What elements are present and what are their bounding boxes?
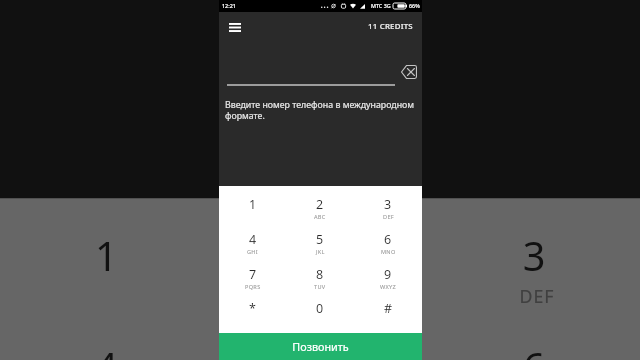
button[interactable]: Backspace [398, 61, 419, 82]
staticText: 66% [409, 2, 420, 9]
staticText: 7 [249, 266, 257, 283]
staticText: Позвонить [292, 339, 349, 354]
button[interactable]: Open navigation menu [224, 17, 245, 38]
staticText: 2 [316, 196, 324, 213]
button[interactable]: 11 CREDITS [359, 15, 422, 38]
staticText: 5 [307, 341, 333, 360]
staticText: 4 [249, 231, 257, 248]
staticText: 3 [384, 196, 392, 213]
staticText: 0 [316, 300, 324, 317]
button[interactable]: 1 [219, 186, 286, 221]
staticText: 9 [384, 266, 392, 283]
button[interactable]: 2 [286, 186, 354, 221]
staticText: GHI [247, 248, 259, 256]
button[interactable]: 7 [219, 256, 286, 290]
staticText: 4 [95, 341, 120, 360]
staticText: 1 [95, 230, 120, 284]
staticText: MNO [381, 248, 396, 256]
button[interactable]: * [219, 290, 286, 334]
staticText: Введите номер телефона в международном ф… [225, 99, 417, 121]
staticText: 5 [316, 231, 324, 248]
staticText: 6 [384, 231, 392, 248]
staticText: WXYZ [380, 283, 397, 291]
staticText: MTC 3G [371, 2, 391, 9]
button[interactable]: 0 [286, 290, 354, 334]
staticText: # [384, 300, 393, 317]
staticText: 6 [523, 341, 548, 360]
button[interactable]: 4 [219, 221, 286, 256]
button[interactable]: 6 [354, 221, 422, 256]
button[interactable]: # [354, 290, 422, 334]
staticText: 2 [307, 230, 333, 284]
staticText: 1 [249, 196, 257, 213]
staticText: * [249, 300, 256, 317]
staticText: TUV [314, 283, 326, 291]
staticText: 12:21 [222, 2, 236, 9]
button[interactable]: Позвонить [219, 333, 422, 360]
staticText: ABC [314, 213, 326, 221]
staticText: DEF [520, 284, 554, 309]
staticText: ABC [301, 284, 339, 309]
button[interactable]: 5 [286, 221, 354, 256]
button[interactable]: 8 [286, 256, 354, 290]
staticText: 11 CREDITS [368, 21, 413, 32]
staticText: 8 [316, 266, 324, 283]
staticText: PQRS [245, 283, 261, 291]
staticText: DEF [383, 213, 394, 221]
staticText: JKL [316, 248, 325, 256]
staticText: 3 [523, 230, 548, 284]
button[interactable]: 9 [354, 256, 422, 290]
button[interactable]: 3 [354, 186, 422, 221]
